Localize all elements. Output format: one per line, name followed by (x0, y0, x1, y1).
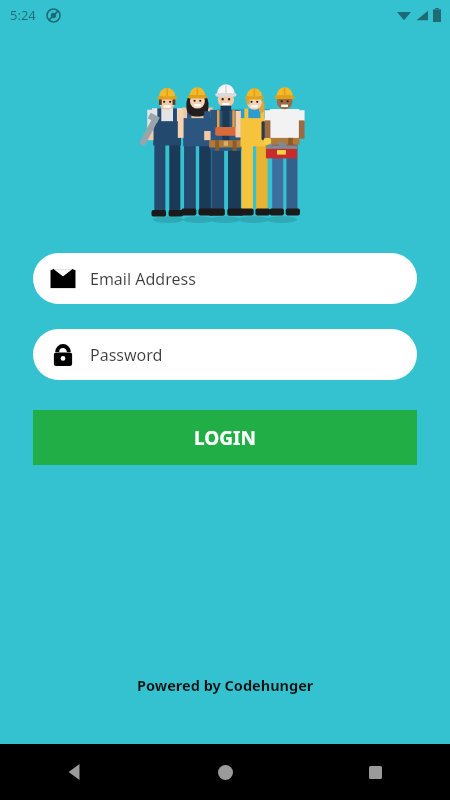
staticText: Password (90, 344, 163, 366)
staticText: Email Address (90, 268, 196, 290)
button[interactable]: Password (33, 329, 417, 380)
button[interactable]: Back (0, 744, 150, 800)
button[interactable]: Recent apps (300, 744, 450, 800)
staticText: 5:24 (10, 6, 36, 24)
button[interactable]: Home (150, 744, 300, 800)
staticText: Powered by Codehunger (137, 675, 314, 695)
staticText: LOGIN (194, 425, 256, 451)
button[interactable]: LOGIN (33, 410, 417, 465)
button[interactable]: Email Address (33, 253, 417, 304)
